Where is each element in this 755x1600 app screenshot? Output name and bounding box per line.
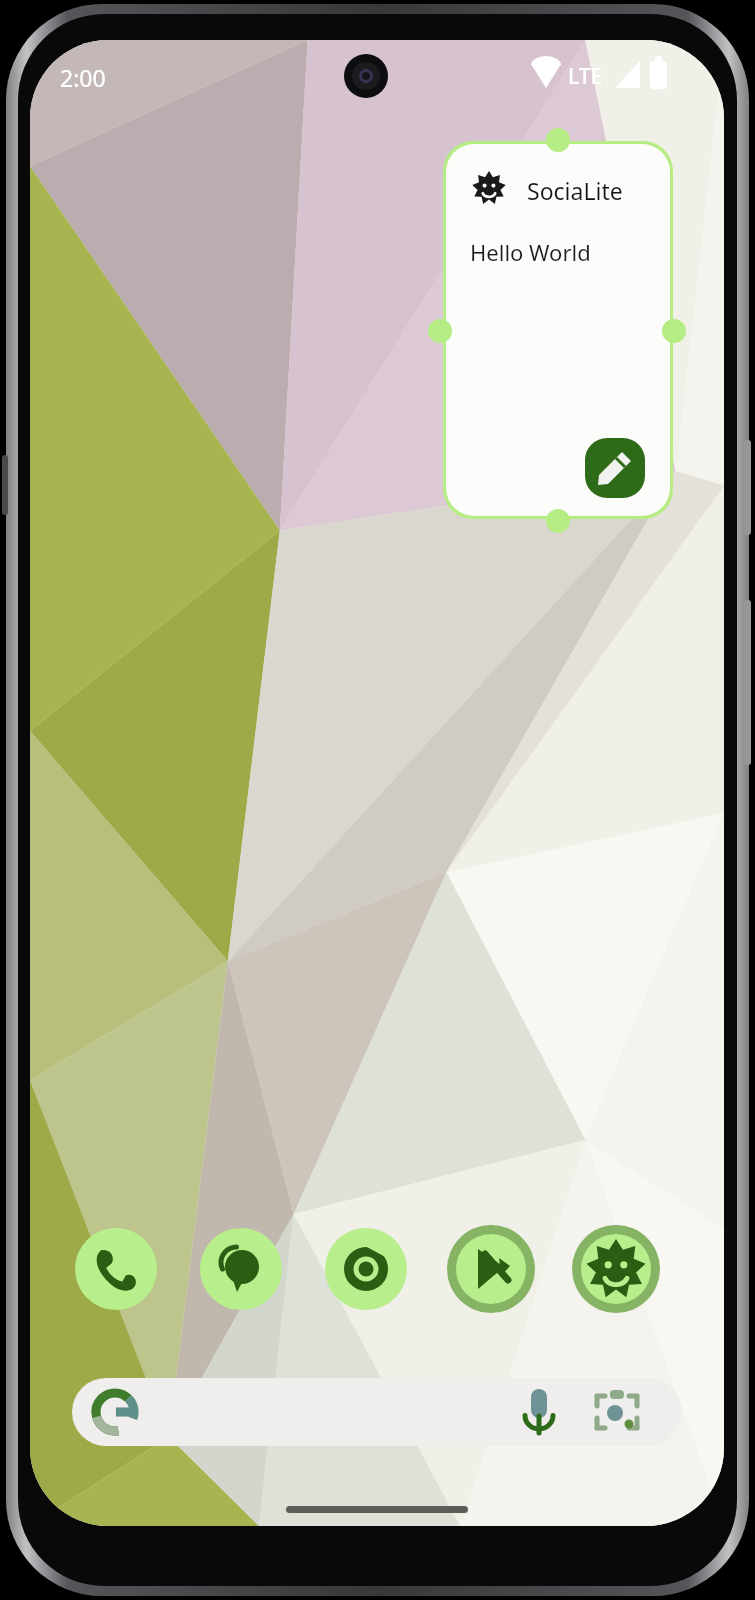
button[interactable]: Edit xyxy=(585,438,645,498)
button[interactable]: Play Store xyxy=(447,1225,535,1313)
button[interactable]: Voice search xyxy=(508,1382,570,1444)
button[interactable]: Chrome xyxy=(325,1228,407,1310)
button[interactable]: Google Lens xyxy=(586,1382,648,1444)
button[interactable]: Messages xyxy=(200,1228,282,1310)
button[interactable]: Phone xyxy=(75,1228,157,1310)
button[interactable]: SociaLite widget xyxy=(446,144,670,516)
button[interactable]: Search xyxy=(72,1378,502,1446)
button[interactable]: SociaLite xyxy=(572,1225,660,1313)
